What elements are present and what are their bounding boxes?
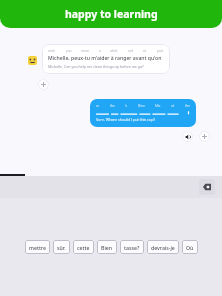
staticText: ord <box>128 49 134 53</box>
staticText: 's <box>125 104 128 108</box>
staticText: happy to learning <box>65 7 158 21</box>
button[interactable]: Add <box>199 131 210 142</box>
button[interactable]: Bien <box>97 240 117 254</box>
staticText: part <box>157 49 164 53</box>
staticText: sûr. <box>57 244 66 251</box>
staticText: Où <box>186 244 194 251</box>
staticText: Bien <box>101 244 113 251</box>
button[interactable]: Backspace <box>199 179 215 195</box>
staticText: whol <box>110 49 118 53</box>
button[interactable]: ar <box>90 99 196 127</box>
staticText: cette <box>77 244 90 251</box>
button[interactable]: cette <box>73 240 94 254</box>
staticText: the <box>110 104 115 108</box>
button[interactable]: sûr. <box>53 240 70 254</box>
staticText: tasse? <box>124 244 140 251</box>
button[interactable]: happy to learning <box>0 0 222 28</box>
button[interactable]: Add <box>38 79 49 90</box>
staticText: the <box>185 104 190 108</box>
button[interactable]: devrais-je <box>147 240 179 254</box>
staticText: ar <box>96 104 100 108</box>
staticText: a <box>99 49 101 53</box>
staticText: Michelle, peux-tu m'aider à ranger avant… <box>48 55 164 62</box>
staticText: nt <box>143 49 147 53</box>
staticText: mich <box>48 49 56 53</box>
button[interactable]: mich <box>42 44 170 74</box>
staticText: mettre <box>29 244 46 251</box>
staticText: more <box>81 49 89 53</box>
staticText: Michelle, Can you help me clean things u… <box>48 64 144 69</box>
button[interactable]: Où <box>182 240 198 254</box>
staticText: Mis <box>155 104 161 108</box>
staticText: Bien <box>138 104 145 108</box>
button[interactable]: Play audio <box>182 131 193 142</box>
other: Avatar <box>28 56 37 65</box>
staticText: devrais-je <box>151 244 175 251</box>
staticText: you <box>66 49 72 53</box>
button[interactable]: tasse? <box>120 240 144 254</box>
staticText: ot <box>171 104 175 108</box>
button[interactable]: mettre <box>25 240 50 254</box>
staticText: Sure. Where should I put this cup? <box>96 117 156 122</box>
